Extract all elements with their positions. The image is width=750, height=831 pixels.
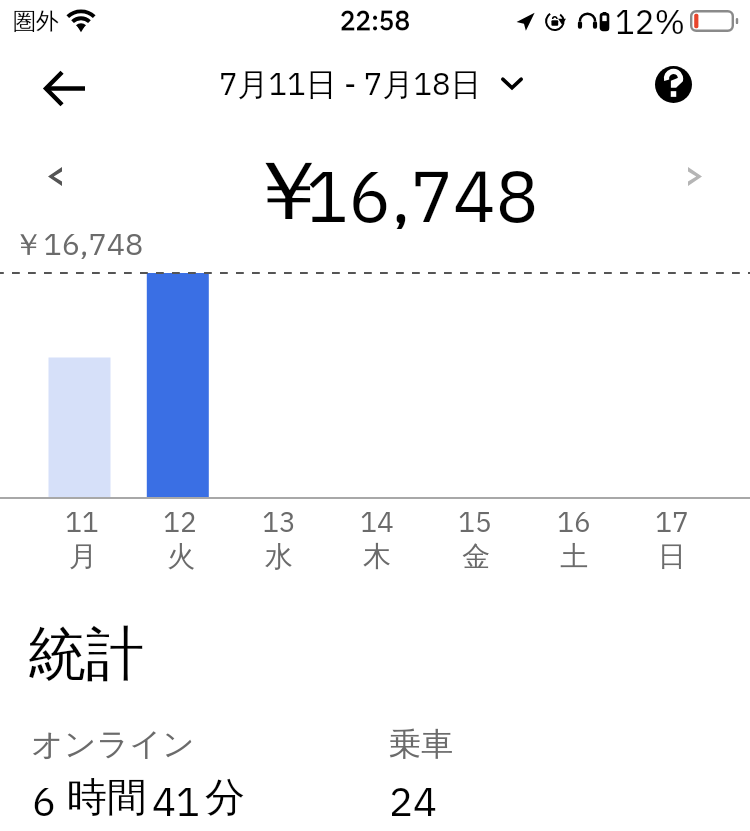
button[interactable]: Help	[650, 61, 696, 107]
staticText: オンライン	[31, 724, 195, 764]
staticText: 統計	[28, 618, 144, 691]
staticText: 乗車	[389, 724, 453, 764]
staticText: 水	[239, 539, 319, 574]
staticText: 圏外	[13, 7, 59, 36]
staticText: 木	[337, 539, 417, 574]
button[interactable]: Back	[35, 55, 93, 113]
staticText: 分	[205, 772, 245, 822]
button[interactable]: Previous week	[29, 150, 81, 202]
staticText: 14	[337, 503, 417, 539]
staticText: 月	[43, 539, 123, 574]
staticText: 土	[534, 539, 614, 574]
staticText: 7月11日 - 7月18日	[219, 63, 482, 104]
button[interactable]: Next week	[669, 150, 721, 202]
button[interactable]: 7月11日 - 7月18日	[219, 63, 523, 104]
staticText: 16	[534, 503, 614, 539]
staticText: 41	[152, 775, 200, 827]
staticText: 日	[632, 539, 712, 574]
staticText: 時間	[67, 772, 147, 822]
staticText: 金	[436, 539, 516, 574]
staticText: 13	[239, 503, 319, 539]
staticText: ￥16,748	[13, 224, 144, 264]
staticText: 15	[435, 503, 515, 539]
staticText: 17	[632, 503, 712, 539]
staticText: 22:58	[340, 3, 410, 37]
staticText: 16,748	[306, 149, 539, 229]
staticText: 6	[32, 775, 56, 827]
staticText: 11	[42, 503, 122, 539]
staticText: 24	[389, 775, 437, 827]
staticText: 火	[141, 539, 221, 574]
staticText: 12%	[615, 0, 686, 42]
staticText: ￥	[245, 139, 331, 219]
staticText: 12	[140, 503, 220, 539]
